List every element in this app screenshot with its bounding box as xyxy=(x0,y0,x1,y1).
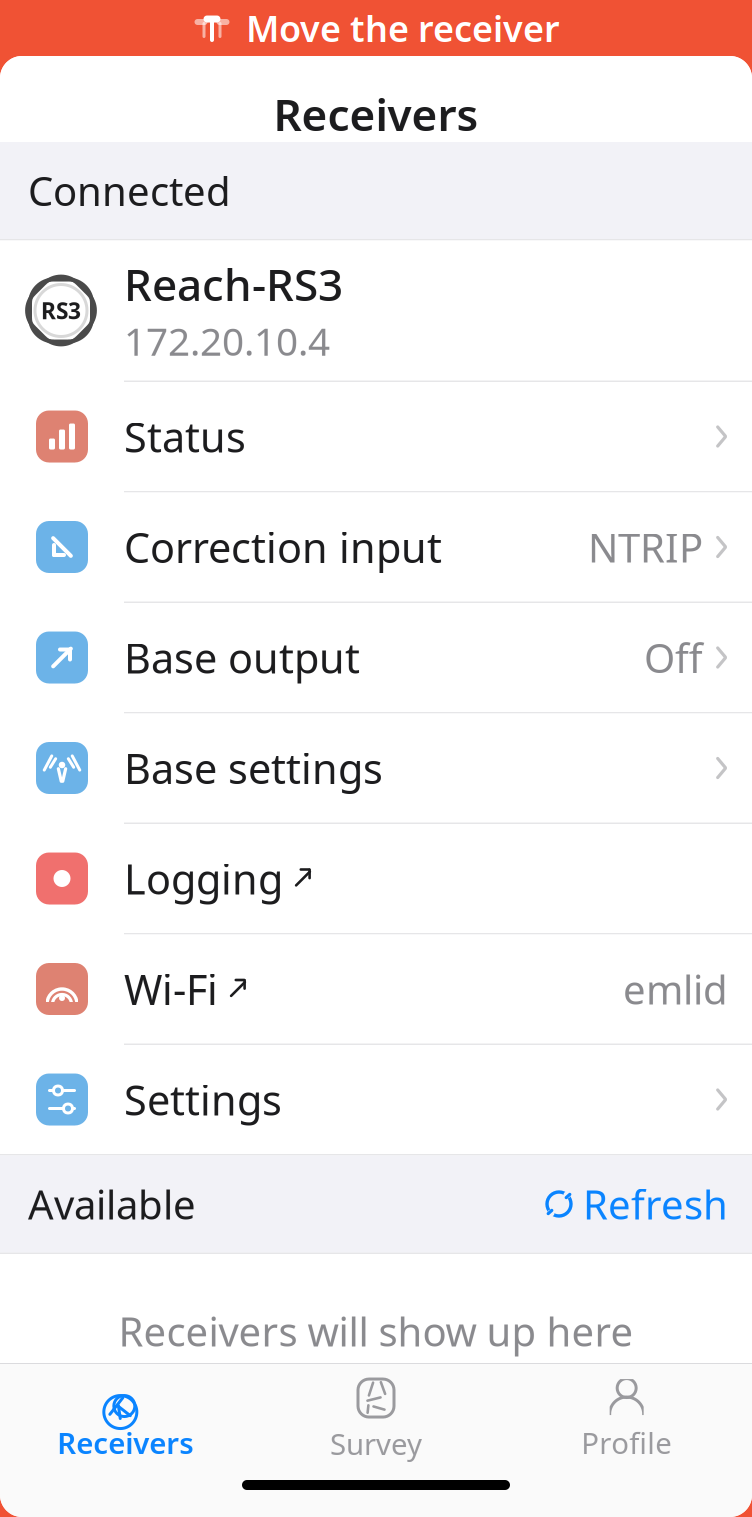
button[interactable]: RS3 xyxy=(0,240,752,382)
button[interactable]: Status xyxy=(0,382,752,492)
staticText: Base settings xyxy=(124,741,383,795)
staticText: Receivers xyxy=(273,85,478,143)
staticText: Profile xyxy=(581,1423,672,1462)
staticText: Refresh xyxy=(583,1177,728,1230)
staticText: emlid xyxy=(623,962,728,1015)
staticText: Wi-Fi xyxy=(124,962,218,1016)
button[interactable]: Profile xyxy=(501,1365,752,1470)
button[interactable]: Logging xyxy=(0,824,752,934)
button[interactable]: Correction input xyxy=(0,492,752,603)
staticText: NTRIP xyxy=(588,520,703,573)
staticText: Reach-RS3 xyxy=(124,255,343,313)
staticText: Receivers xyxy=(57,1423,193,1462)
staticText: Status xyxy=(124,409,246,464)
staticText: Move the receiver xyxy=(246,4,560,52)
staticText: Receivers will show up here xyxy=(118,1304,633,1357)
staticText: RS3 xyxy=(41,295,81,325)
staticText: Connected xyxy=(28,164,231,217)
staticText: Settings xyxy=(124,1072,282,1127)
button[interactable]: Survey xyxy=(251,1364,501,1471)
button[interactable]: Base settings xyxy=(0,713,752,824)
staticText: Survey xyxy=(330,1424,422,1463)
button[interactable]: Base output xyxy=(0,603,752,713)
button[interactable]: Refresh xyxy=(545,1167,752,1240)
staticText: Base output xyxy=(124,630,360,685)
staticText: Available xyxy=(28,1177,196,1230)
staticText: Logging xyxy=(124,851,283,906)
staticText: 172.20.10.4 xyxy=(124,315,330,366)
button[interactable]: Receivers xyxy=(0,1365,251,1470)
button[interactable]: Wi-Fi xyxy=(0,934,752,1045)
staticText: Correction input xyxy=(124,520,442,574)
staticText: Off xyxy=(644,631,703,684)
button[interactable]: Move the receiver xyxy=(0,0,752,56)
button[interactable]: Settings xyxy=(0,1045,752,1154)
